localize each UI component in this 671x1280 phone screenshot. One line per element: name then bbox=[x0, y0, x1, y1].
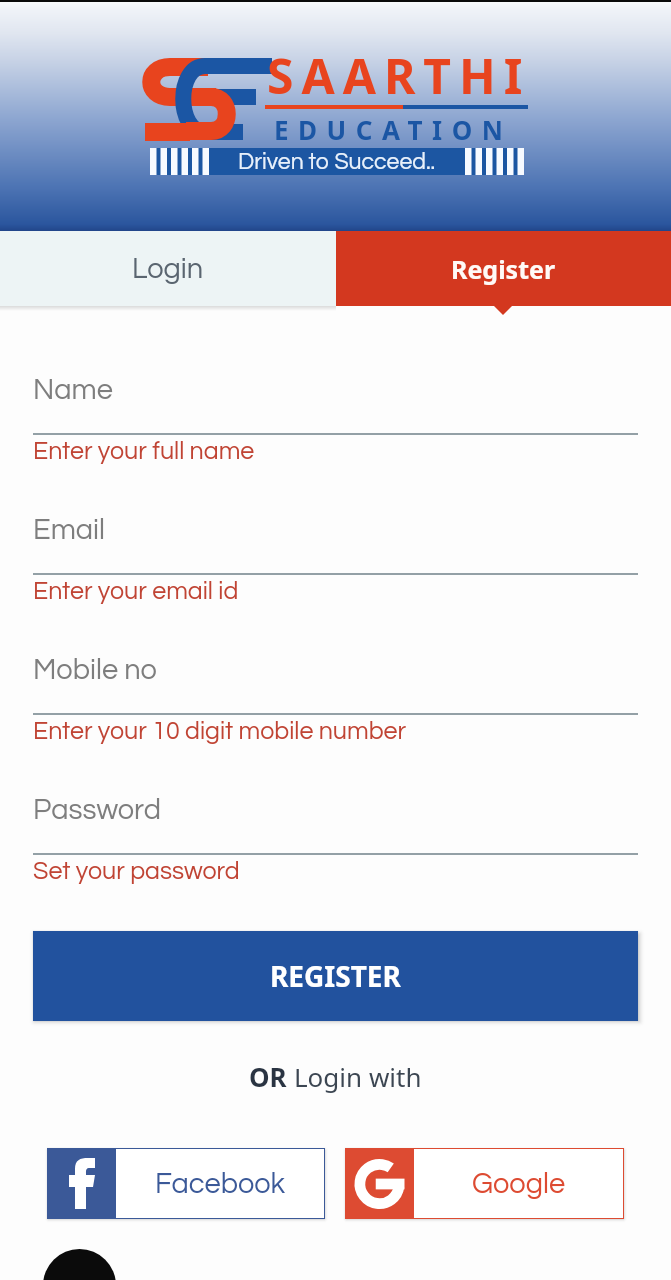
staticText: Email bbox=[33, 515, 105, 545]
button[interactable]: Register bbox=[336, 231, 671, 306]
button[interactable]: REGISTER bbox=[33, 931, 638, 1021]
button[interactable]: Profile bbox=[43, 1249, 116, 1280]
button[interactable]: Facebook bbox=[47, 1148, 325, 1219]
staticText: SAARTHI bbox=[267, 43, 531, 108]
staticText: Facebook bbox=[155, 1169, 286, 1199]
staticText: Mobile no bbox=[33, 655, 157, 685]
staticText: Login with bbox=[294, 1059, 422, 1094]
staticText: Google bbox=[472, 1169, 566, 1199]
staticText: REGISTER bbox=[270, 957, 401, 995]
staticText: Register bbox=[451, 252, 556, 286]
staticText: Enter your full name bbox=[33, 438, 255, 464]
staticText: Driven to Succeed.. bbox=[238, 150, 436, 174]
staticText: Login bbox=[132, 254, 204, 284]
button[interactable]: Google bbox=[345, 1148, 624, 1219]
staticText: Name bbox=[33, 375, 113, 405]
staticText: Set your password bbox=[33, 858, 240, 884]
staticText: EDUCATION bbox=[274, 112, 513, 147]
staticText: Password bbox=[33, 795, 162, 825]
staticText: Enter your email id bbox=[33, 578, 239, 604]
staticText: OR bbox=[249, 1059, 287, 1094]
staticText: Enter your 10 digit mobile number bbox=[33, 718, 407, 744]
button[interactable]: Login bbox=[0, 231, 336, 306]
